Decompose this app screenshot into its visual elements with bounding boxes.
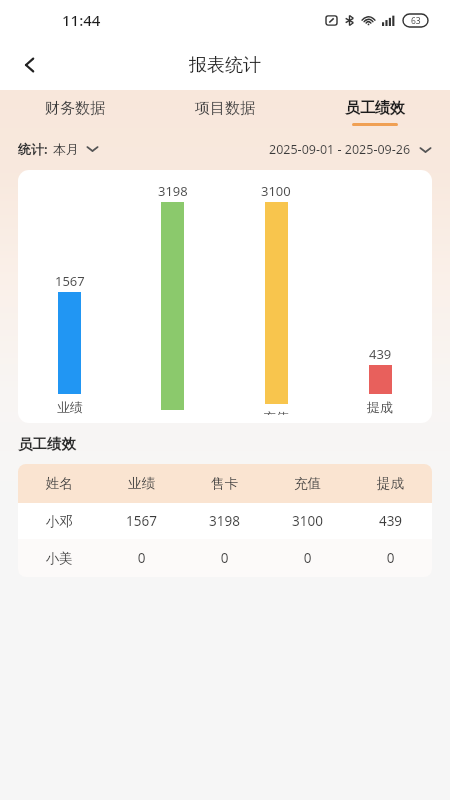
button[interactable]: 统计:	[18, 140, 99, 158]
staticText: 员工绩效	[18, 435, 76, 453]
staticText: 充值	[266, 475, 349, 492]
staticText: 63	[411, 15, 421, 27]
button[interactable]: Back	[10, 45, 50, 85]
staticText: 439	[369, 345, 392, 363]
staticText: 3198	[183, 512, 266, 530]
staticText: 3100	[266, 512, 349, 530]
staticText: 2025-09-01 - 2025-09-26	[269, 141, 411, 158]
staticText: 员工绩效	[345, 99, 405, 118]
button[interactable]: 员工绩效	[300, 90, 450, 135]
staticText: 小邓	[18, 513, 100, 530]
staticText: 0	[266, 549, 349, 567]
staticText: 0	[349, 549, 432, 567]
staticText: 3198	[158, 182, 188, 200]
staticText: 439	[349, 512, 432, 530]
staticText: 11:44	[62, 10, 101, 30]
staticText: 1567	[100, 512, 183, 530]
staticText: 本月	[53, 141, 79, 157]
button[interactable]: 项目数据	[150, 90, 300, 135]
staticText: 提成	[367, 399, 393, 415]
staticText: 姓名	[18, 475, 100, 492]
button[interactable]: 2025-09-01 - 2025-09-26	[269, 141, 432, 158]
staticText: 统计:	[18, 140, 48, 158]
staticText: 业绩	[100, 475, 183, 492]
staticText: 业绩	[57, 399, 83, 415]
staticText: 充值	[263, 409, 289, 415]
staticText: 提成	[349, 475, 432, 492]
staticText: 0	[100, 549, 183, 567]
staticText: 报表统计	[189, 54, 261, 77]
button[interactable]: 小邓	[18, 503, 432, 539]
staticText: 财务数据	[45, 99, 105, 118]
staticText: 1567	[55, 272, 85, 290]
staticText: 3100	[261, 182, 291, 200]
button[interactable]: 财务数据	[0, 90, 150, 135]
staticText: 0	[183, 549, 266, 567]
staticText: 售卡	[183, 475, 266, 492]
button[interactable]: 小美	[18, 539, 432, 577]
staticText: 小美	[18, 550, 100, 567]
staticText: 项目数据	[195, 99, 255, 118]
